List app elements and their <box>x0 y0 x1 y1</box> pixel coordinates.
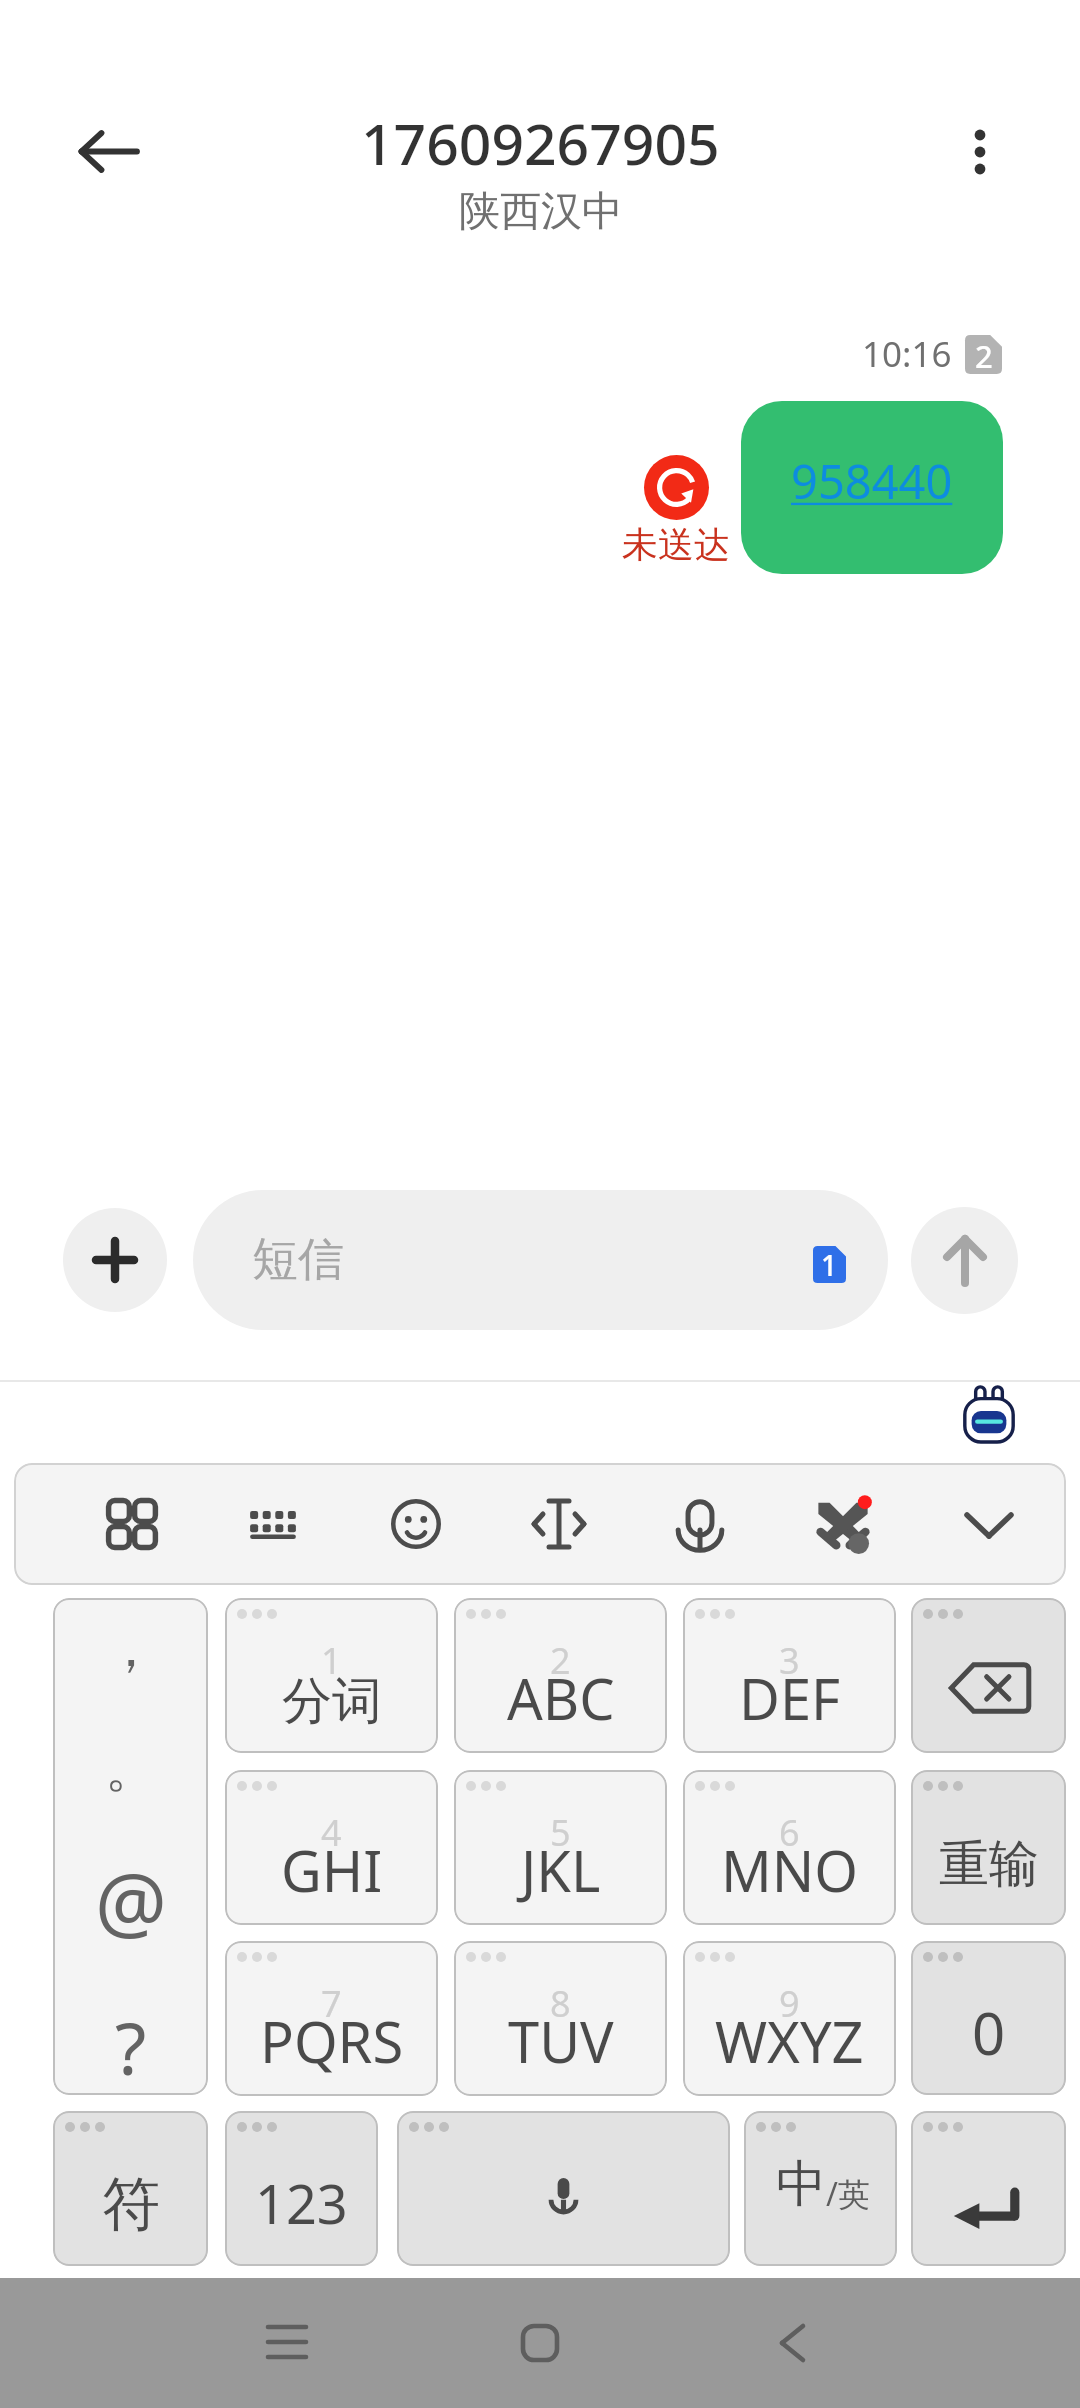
staticText: 0 <box>972 1993 1006 2072</box>
staticText: 7 <box>321 1979 342 2028</box>
staticText: 123 <box>255 2166 348 2240</box>
staticText: 2 <box>550 1636 571 1685</box>
staticText: MNO <box>721 1832 859 1908</box>
button[interactable]: 0 <box>911 1941 1066 2095</box>
staticText: ， <box>105 1616 157 1682</box>
button[interactable]: 8 <box>454 1941 667 2096</box>
button[interactable]: Keyboard layout <box>212 1463 334 1585</box>
staticText: ? <box>115 1998 147 2095</box>
staticText: PQRS <box>260 2003 404 2079</box>
staticText: ABC <box>507 1660 615 1736</box>
button[interactable]: 中 <box>744 2111 897 2266</box>
button[interactable]: 5 <box>454 1770 667 1925</box>
button[interactable]: Recent apps <box>227 2283 347 2403</box>
staticText: @ <box>95 1846 167 1955</box>
staticText: 符 <box>102 2168 160 2241</box>
button[interactable]: Home <box>480 2283 600 2403</box>
button[interactable]: 重输 <box>911 1770 1066 1925</box>
staticText: 重输 <box>939 1833 1039 1896</box>
staticText: 4 <box>321 1808 342 1857</box>
staticText: 9 <box>779 1979 800 2028</box>
button[interactable]: Resend message <box>616 455 736 567</box>
button[interactable]: 123 <box>225 2111 378 2266</box>
staticText: 5 <box>550 1808 571 1857</box>
button[interactable]: 1 <box>225 1598 438 1753</box>
staticText: 中 <box>776 2153 826 2216</box>
staticText: 未送达 <box>622 522 730 567</box>
staticText: WXYZ <box>715 2003 864 2079</box>
button[interactable]: 3 <box>683 1598 896 1753</box>
button[interactable]: Hide keyboard <box>928 1463 1050 1585</box>
staticText: 8 <box>550 1979 571 2028</box>
staticText: 1 <box>321 1636 342 1685</box>
button[interactable]: Punctuation <box>53 1598 208 2095</box>
button[interactable]: 9 <box>683 1941 896 2096</box>
button[interactable]: Voice input <box>397 2111 730 2266</box>
button[interactable]: Back <box>732 2283 852 2403</box>
staticText: 6 <box>779 1808 800 1857</box>
staticText: DEF <box>739 1660 841 1736</box>
staticText: 10:16 <box>862 330 952 378</box>
staticText: 958440 <box>791 449 953 513</box>
staticText: 。 <box>105 1736 157 1802</box>
button[interactable]: 4 <box>225 1770 438 1925</box>
button[interactable]: Delete <box>911 1598 1066 1753</box>
button[interactable]: 短信 <box>193 1190 888 1330</box>
staticText: 3 <box>779 1636 800 1685</box>
button[interactable]: 958440 <box>741 401 1003 574</box>
button[interactable]: 7 <box>225 1941 438 2096</box>
staticText: TUV <box>508 2003 614 2079</box>
button[interactable]: Back <box>54 96 164 206</box>
button[interactable]: 符 <box>53 2111 208 2266</box>
button[interactable]: Send <box>911 1207 1018 1314</box>
button[interactable]: Voice input <box>639 1463 761 1585</box>
staticText: GHI <box>281 1832 383 1908</box>
button[interactable]: 2 <box>454 1598 667 1753</box>
staticText: 17609267905 <box>361 104 720 182</box>
button[interactable]: Emoji <box>355 1463 477 1585</box>
button[interactable]: 6 <box>683 1770 896 1925</box>
button[interactable]: More options <box>925 96 1035 206</box>
staticText: 分词 <box>282 1670 382 1733</box>
button[interactable]: Enter <box>911 2111 1066 2266</box>
staticText: 短信 <box>252 1231 344 1289</box>
button[interactable]: Move cursor <box>497 1463 619 1585</box>
staticText: /英 <box>826 2172 870 2216</box>
staticText: 陕西汉中 <box>459 186 623 238</box>
button[interactable]: Apps <box>71 1463 193 1585</box>
button[interactable]: Advertisement <box>782 1463 904 1585</box>
staticText: 2 <box>975 335 993 374</box>
staticText: 1 <box>821 1246 838 1283</box>
button[interactable]: Add attachment <box>63 1208 167 1312</box>
staticText: JKL <box>521 1832 601 1908</box>
